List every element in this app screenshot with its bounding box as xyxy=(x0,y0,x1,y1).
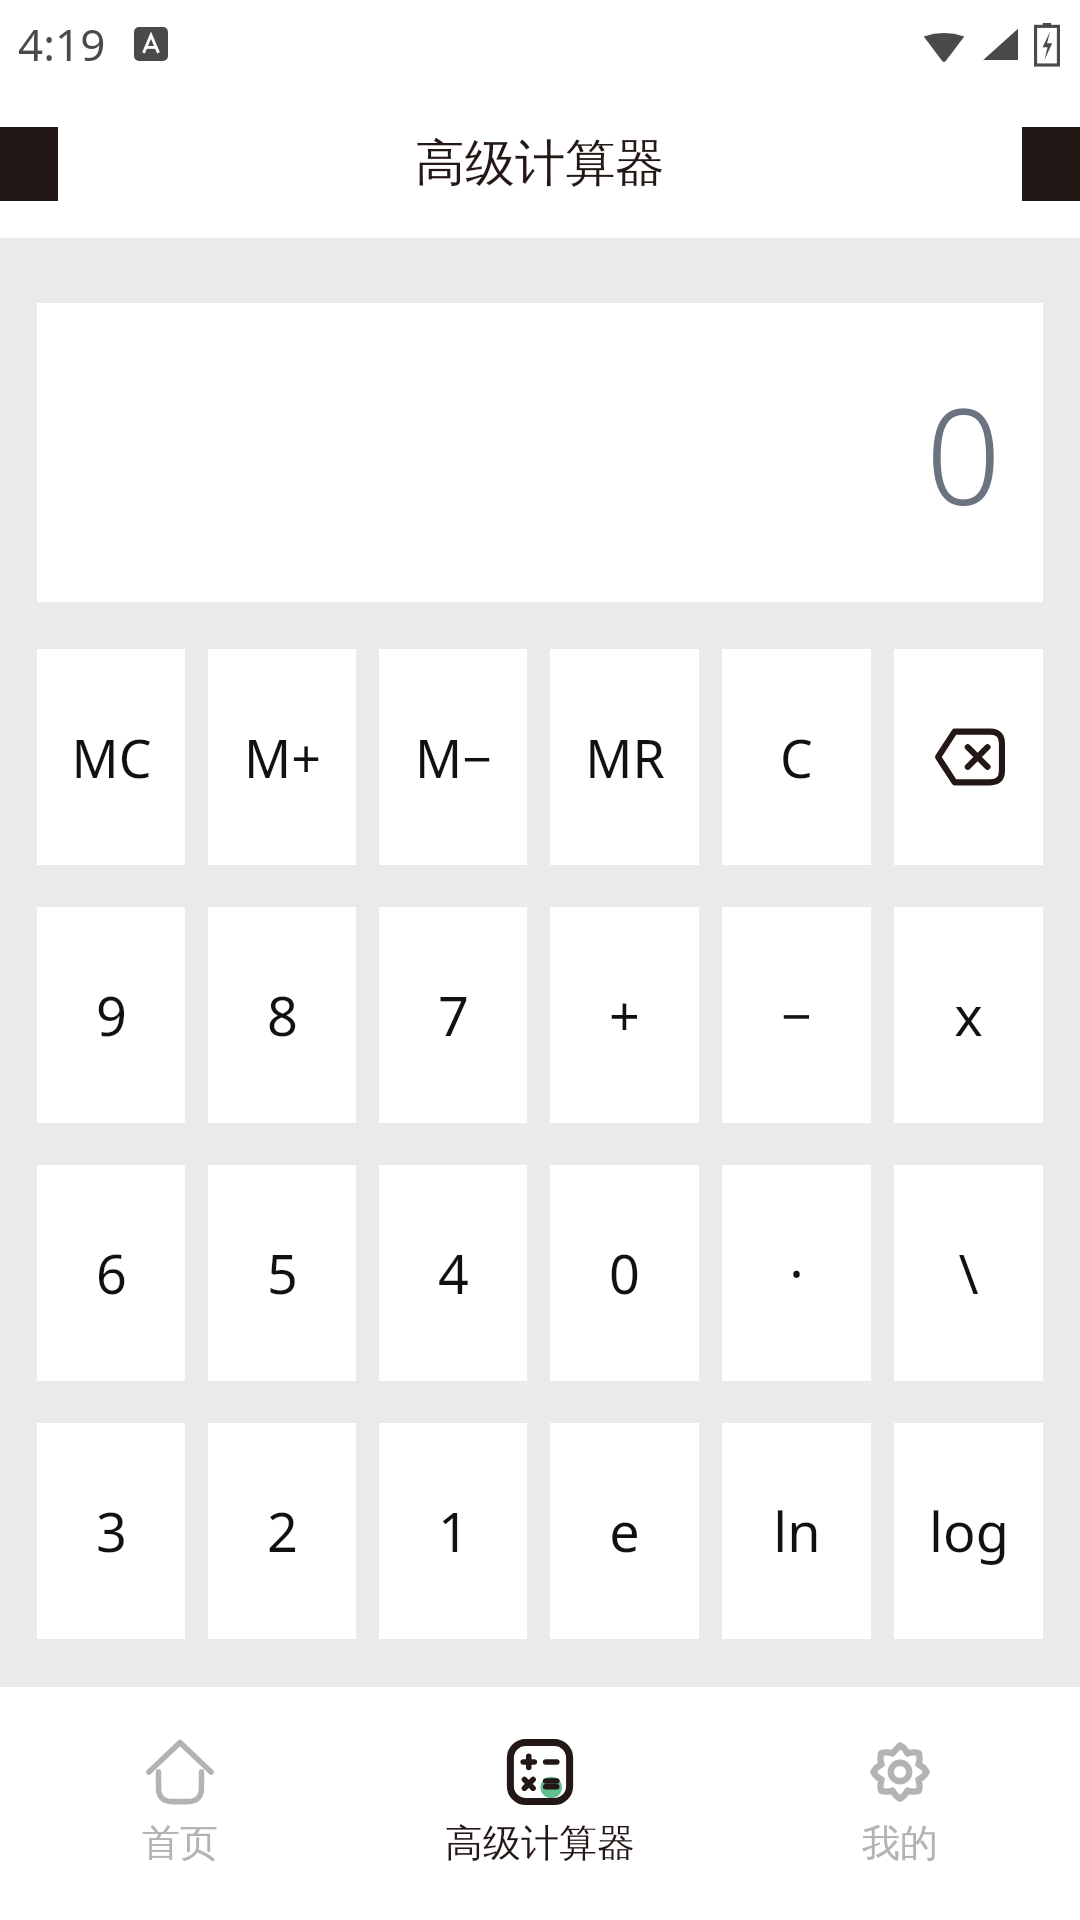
staticText: log xyxy=(929,1494,1009,1568)
button[interactable]: \ xyxy=(894,1165,1043,1381)
button[interactable]: 0 xyxy=(550,1165,699,1381)
button[interactable]: 8 xyxy=(208,907,356,1123)
staticText: 8 xyxy=(267,978,298,1052)
staticText: 3 xyxy=(96,1494,127,1568)
button[interactable]: 6 xyxy=(37,1165,185,1381)
button[interactable]: + xyxy=(550,907,699,1123)
staticText: MR xyxy=(585,722,665,793)
button[interactable]: 2 xyxy=(208,1423,356,1639)
button[interactable]: 我的 xyxy=(720,1687,1080,1920)
button[interactable]: M− xyxy=(379,649,527,865)
button[interactable]: 高级计算器 xyxy=(360,1687,720,1920)
button[interactable]: · xyxy=(722,1165,871,1381)
button[interactable]: ln xyxy=(722,1423,871,1639)
button[interactable]: x xyxy=(894,907,1043,1123)
staticText: 6 xyxy=(96,1236,127,1310)
button[interactable]: Backspace xyxy=(894,649,1043,865)
staticText: MC xyxy=(71,722,152,793)
button[interactable]: M+ xyxy=(208,649,356,865)
staticText: 7 xyxy=(438,978,469,1052)
staticText: \ xyxy=(958,1236,979,1310)
staticText: 4 xyxy=(438,1236,469,1310)
staticText: 首页 xyxy=(142,1819,218,1867)
button[interactable]: − xyxy=(722,907,871,1123)
button[interactable]: C xyxy=(722,649,871,865)
staticText: · xyxy=(789,1236,804,1310)
staticText: 我的 xyxy=(862,1819,938,1867)
staticText: + xyxy=(609,978,640,1052)
staticText: 0 xyxy=(609,1236,640,1310)
staticText: e xyxy=(609,1494,640,1568)
button[interactable]: log xyxy=(894,1423,1043,1639)
button[interactable]: 9 xyxy=(37,907,185,1123)
staticText: 4:19 xyxy=(18,14,106,74)
staticText: 高级计算器 xyxy=(445,1819,635,1867)
staticText: M+ xyxy=(244,722,321,793)
staticText: − xyxy=(781,978,812,1052)
button[interactable]: 1 xyxy=(379,1423,527,1639)
staticText: 2 xyxy=(267,1494,298,1568)
button[interactable]: 4 xyxy=(379,1165,527,1381)
button[interactable]: MR xyxy=(550,649,699,865)
staticText: 0 xyxy=(925,364,1001,544)
button[interactable]: 首页 xyxy=(0,1687,360,1920)
staticText: C xyxy=(780,722,813,793)
button[interactable]: e xyxy=(550,1423,699,1639)
button[interactable]: MC xyxy=(37,649,185,865)
staticText: 5 xyxy=(267,1236,298,1310)
staticText: ln xyxy=(773,1494,821,1568)
button[interactable]: 3 xyxy=(37,1423,185,1639)
staticText: M− xyxy=(415,722,492,793)
staticText: 1 xyxy=(438,1494,469,1568)
staticText: 高级计算器 xyxy=(415,132,665,195)
staticText: 9 xyxy=(96,978,127,1052)
button[interactable]: 7 xyxy=(379,907,527,1123)
button[interactable]: 5 xyxy=(208,1165,356,1381)
staticText: x xyxy=(954,978,983,1052)
